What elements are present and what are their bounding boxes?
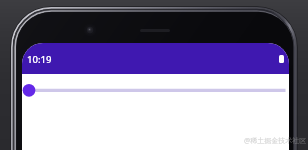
button[interactable] bbox=[22, 74, 289, 107]
other: Battery bbox=[279, 55, 284, 63]
other: Front camera bbox=[83, 23, 97, 37]
staticText: 10:19 bbox=[27, 53, 52, 66]
staticText: @稀土掘金技术社区 bbox=[244, 136, 307, 146]
